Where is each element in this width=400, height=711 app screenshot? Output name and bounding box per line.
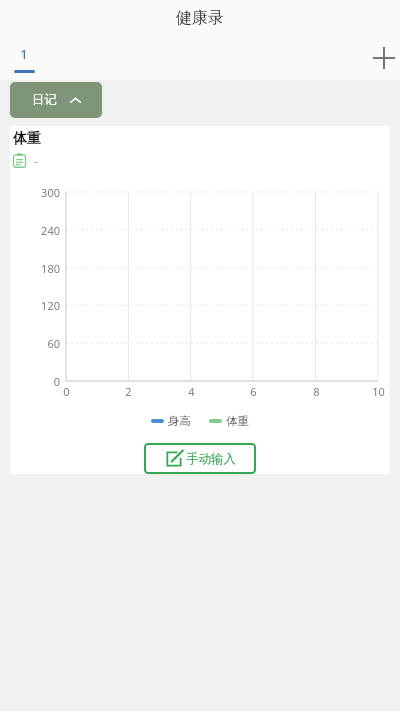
staticText: 120 <box>41 298 60 313</box>
staticText: 6 <box>250 384 257 399</box>
staticText: 2 <box>125 384 132 399</box>
staticText: 0 <box>63 384 70 399</box>
staticText: 60 <box>47 336 60 351</box>
staticText: 180 <box>41 261 60 276</box>
staticText: 300 <box>41 185 60 200</box>
staticText: - <box>34 153 38 168</box>
staticText: 0 <box>53 374 60 389</box>
staticText: 240 <box>41 223 60 238</box>
staticText: 体重 <box>13 130 41 148</box>
button[interactable]: 身高 <box>151 414 191 428</box>
button[interactable]: 1 <box>10 40 38 78</box>
button[interactable]: 手动输入 <box>144 443 256 474</box>
staticText: 8 <box>313 384 320 399</box>
button[interactable]: 体重 <box>209 414 249 428</box>
staticText: 身高 <box>168 414 191 428</box>
staticText: 体重 <box>226 414 249 428</box>
staticText: 4 <box>188 384 195 399</box>
staticText: 1 <box>20 45 28 63</box>
staticText: 手动输入 <box>186 451 236 467</box>
staticText: 日记 <box>32 92 57 108</box>
button[interactable]: 日记 <box>10 82 102 118</box>
staticText: 10 <box>372 384 385 399</box>
staticText: 健康录 <box>176 8 224 28</box>
button[interactable]: Add <box>363 37 400 79</box>
